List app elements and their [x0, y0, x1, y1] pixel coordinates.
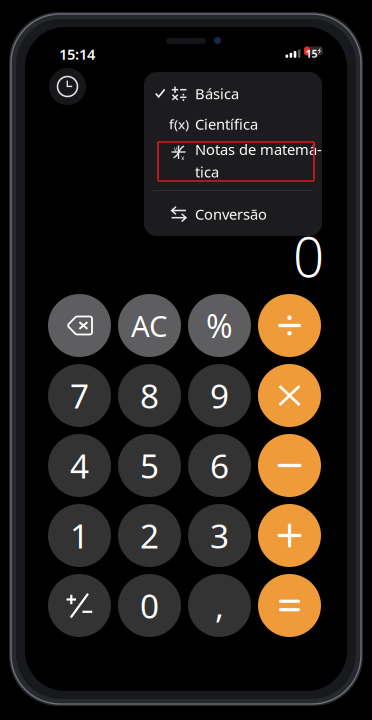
- staticText: 15:14: [59, 44, 95, 64]
- staticText: 0: [293, 220, 324, 292]
- staticText: f(x): [169, 115, 189, 133]
- button[interactable]: Básica: [144, 78, 322, 109]
- button[interactable]: f(x): [144, 109, 322, 139]
- staticText: 8: [140, 373, 159, 418]
- button[interactable]: 9: [188, 364, 251, 427]
- button[interactable]: 2: [118, 504, 181, 567]
- button[interactable]: Multiply: [258, 364, 321, 427]
- staticText: Conversão: [195, 204, 267, 224]
- button[interactable]: 7: [48, 364, 111, 427]
- staticText: AC: [131, 306, 168, 345]
- button[interactable]: All clear: [118, 294, 181, 357]
- button[interactable]: 0: [118, 574, 181, 637]
- button[interactable]: 1: [48, 504, 111, 567]
- button[interactable]: History: [49, 68, 86, 105]
- staticText: 15: [306, 47, 318, 61]
- button[interactable]: Add: [258, 504, 321, 567]
- staticText: 1: [70, 513, 89, 558]
- button[interactable]: 6: [188, 434, 251, 497]
- button[interactable]: Divide: [258, 294, 321, 357]
- button[interactable]: Equals: [258, 574, 321, 637]
- staticText: y: [174, 144, 177, 153]
- staticText: 5: [140, 443, 159, 488]
- button[interactable]: 5: [118, 434, 181, 497]
- button[interactable]: Conversão: [144, 198, 322, 230]
- staticText: Notas de matemá-: [195, 139, 322, 159]
- staticText: 2: [140, 513, 159, 558]
- staticText: 3: [210, 513, 229, 558]
- staticText: 4: [70, 443, 89, 488]
- staticText: 9: [210, 373, 229, 418]
- staticText: Científica: [195, 114, 258, 134]
- button[interactable]: 8: [118, 364, 181, 427]
- button[interactable]: Delete: [48, 294, 111, 357]
- button[interactable]: Toggle sign: [48, 574, 111, 637]
- button[interactable]: y: [144, 139, 322, 182]
- staticText: x: [181, 153, 185, 162]
- button[interactable]: Subtract: [258, 434, 321, 497]
- staticText: 6: [210, 443, 229, 488]
- staticText: tica: [195, 162, 219, 181]
- staticText: 7: [70, 373, 89, 418]
- button[interactable]: 4: [48, 434, 111, 497]
- staticText: ,: [215, 583, 224, 628]
- staticText: Básica: [195, 84, 239, 103]
- button[interactable]: Decimal comma: [188, 574, 251, 637]
- staticText: 0: [140, 583, 159, 628]
- button[interactable]: Percent: [188, 294, 251, 357]
- button[interactable]: 3: [188, 504, 251, 567]
- staticText: %: [206, 304, 233, 347]
